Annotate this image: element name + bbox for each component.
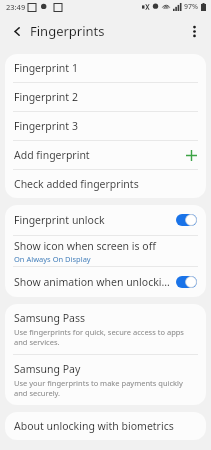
button[interactable]: Add fingerprint [5,141,206,169]
staticText: Fingerprint 2 [14,90,78,104]
staticText: On Always On Display [14,254,91,264]
staticText: Samsung Pay [14,362,81,376]
button[interactable]: Fingerprint unlock [5,205,206,235]
staticText: Use fingerprints for quick, secure acces… [14,327,197,347]
staticText: About unlocking with biometrics [14,419,174,433]
staticText: Add fingerprint [14,148,186,162]
button[interactable]: About unlocking with biometrics [5,412,206,440]
staticText: Check added fingerprints [14,177,139,191]
button[interactable]: Fingerprint 1 [5,54,206,82]
staticText: Fingerprint 1 [14,61,78,75]
staticText: Use your fingerprints to make payments q… [14,378,197,398]
staticText: Fingerprint unlock [14,213,172,227]
staticText: Fingerprints [30,22,105,40]
staticText: Show icon when screen is off [14,239,156,253]
staticText: 23:49 [6,2,26,12]
button[interactable]: Show icon when screen is off [5,236,206,266]
button[interactable]: More options [180,17,208,45]
button[interactable]: Samsung Pay [5,355,206,405]
button[interactable]: Back [2,16,32,46]
staticText: 97% [184,2,198,12]
staticText: Samsung Pass [14,311,85,325]
button[interactable]: Fingerprint 2 [5,83,206,111]
button[interactable]: Check added fingerprints [5,170,206,198]
staticText: Fingerprint 3 [14,119,78,133]
button[interactable]: Samsung Pass [5,304,206,354]
staticText: Show animation when unlocking [14,275,172,289]
button[interactable]: Fingerprint 3 [5,112,206,140]
button[interactable]: Show animation when unlocking [5,267,206,297]
